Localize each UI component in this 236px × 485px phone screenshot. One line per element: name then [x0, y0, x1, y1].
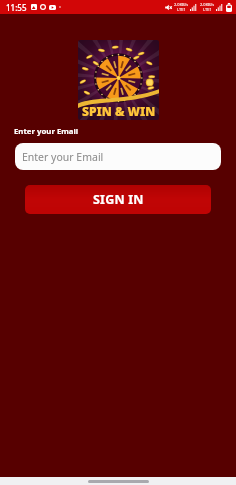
staticText: 11:55: [6, 2, 27, 13]
staticText: LTE1: [203, 7, 212, 12]
staticText: LTE1: [177, 7, 186, 12]
other: Home gesture bar: [88, 480, 149, 483]
staticText: SPIN & WIN: [82, 103, 156, 119]
staticText: 2.0KB/s: [174, 2, 189, 7]
staticText: Enter your Email: [22, 150, 104, 164]
button[interactable]: SIGN IN: [25, 185, 211, 214]
staticText: 2.0KB/s: [200, 2, 215, 7]
staticText: SIGN IN: [93, 191, 144, 208]
staticText: Enter your Email: [14, 126, 79, 137]
button[interactable]: Enter your Email: [15, 143, 221, 170]
